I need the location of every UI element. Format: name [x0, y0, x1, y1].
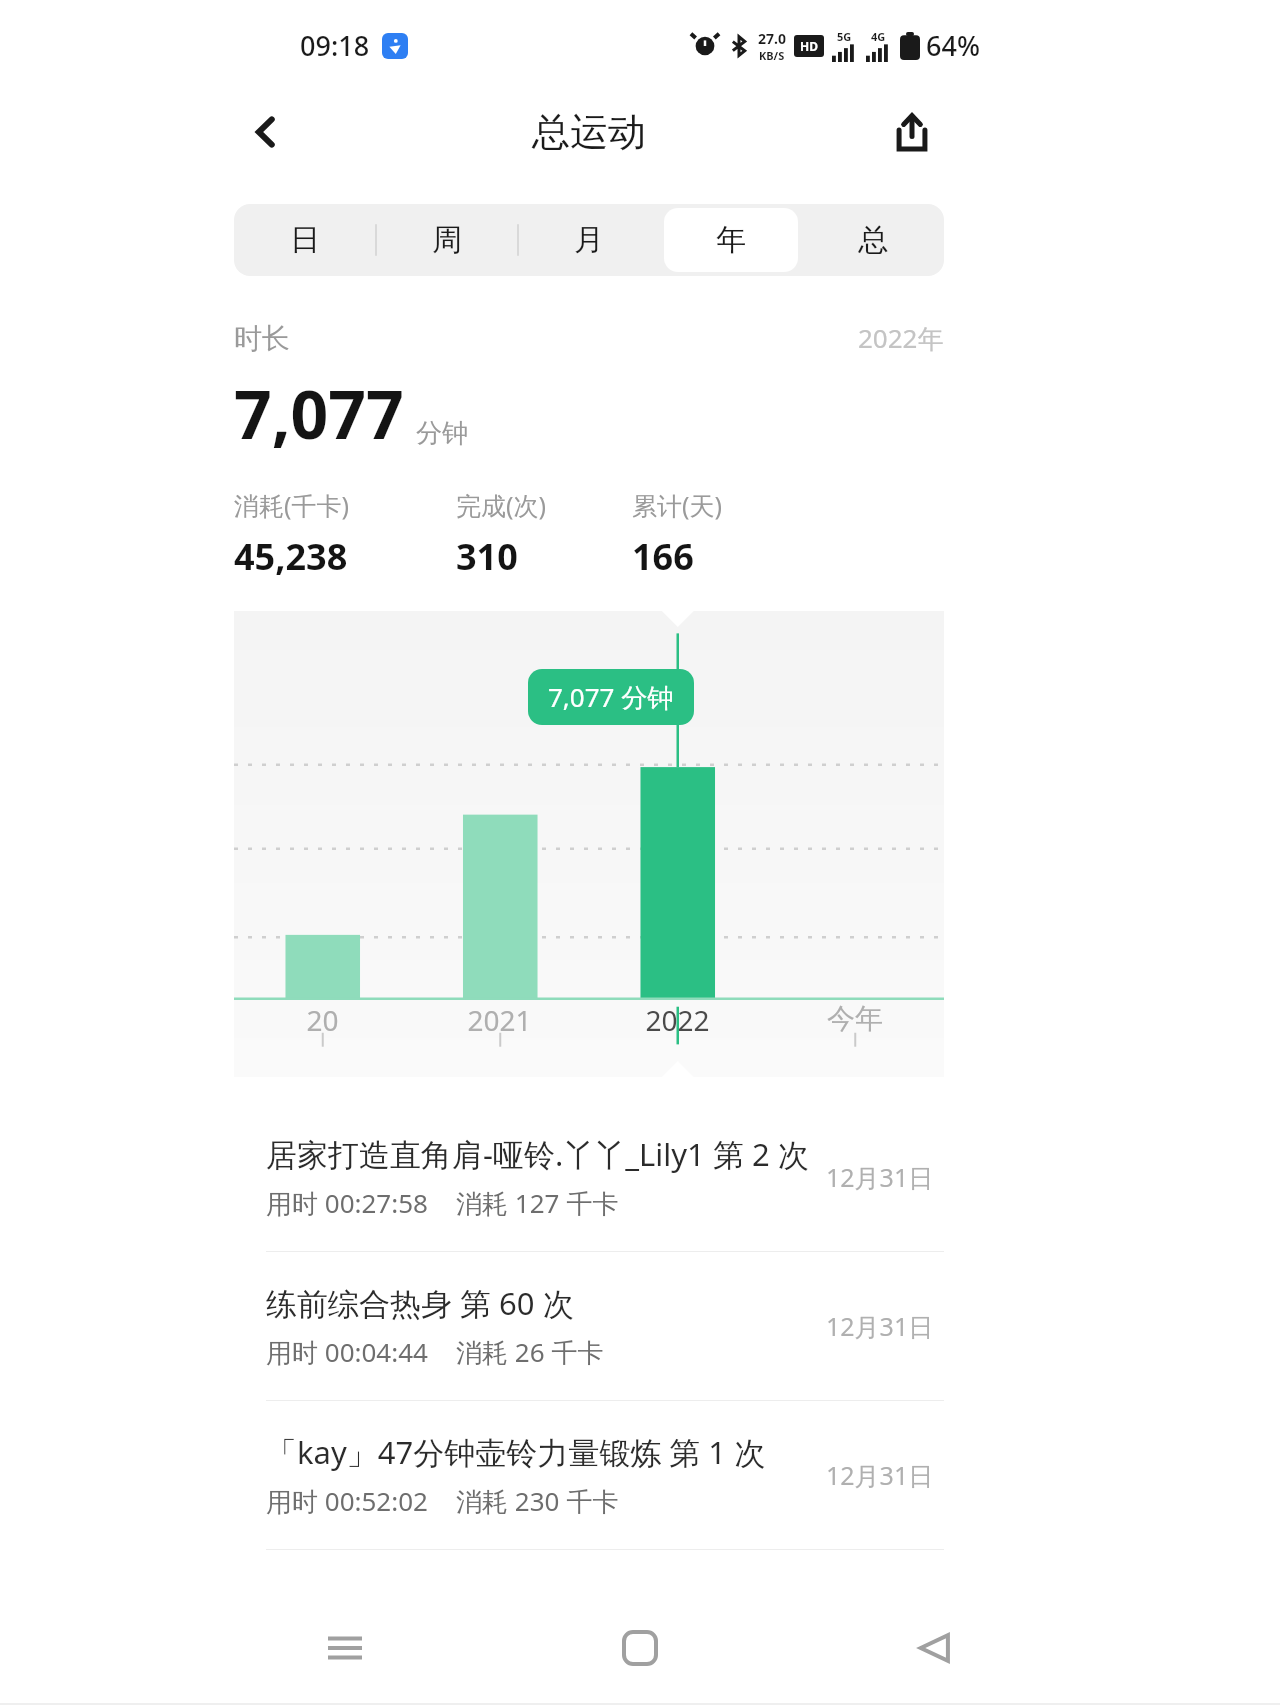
staticText: 「kay」47分钟壶铃力量锻炼 第 1 次 — [266, 1431, 766, 1473]
button[interactable]: 总 — [806, 208, 940, 272]
button[interactable]: 日 — [238, 208, 372, 272]
button[interactable]: Back — [234, 100, 298, 164]
staticText: 累计(天) — [632, 488, 723, 522]
button[interactable]: Home — [595, 1603, 685, 1693]
staticText: 消耗(千卡) — [234, 488, 350, 522]
staticText: 用时 00:27:58 — [266, 1185, 428, 1221]
staticText: 12月31日 — [826, 1458, 934, 1492]
button[interactable]: 练前综合热身 第 60 次 — [234, 1252, 944, 1400]
staticText: 166 — [632, 532, 694, 581]
staticText: 7,077 — [234, 368, 404, 458]
staticText: 用时 00:52:02 — [266, 1483, 428, 1519]
staticText: 2021 — [467, 1001, 532, 1039]
button[interactable]: Recent apps — [300, 1603, 390, 1693]
staticText: 09:18 — [300, 27, 370, 64]
button[interactable]: 周 — [380, 208, 514, 272]
staticText: 27.0 — [758, 29, 786, 48]
staticText: 时长 — [234, 321, 290, 356]
staticText: 年 — [716, 221, 746, 259]
staticText: 2022 — [645, 1001, 710, 1039]
staticText: 总 — [858, 221, 888, 259]
button[interactable]: 居家打造直角肩-哑铃.丫丫_Lily1 第 2 次 — [234, 1103, 944, 1251]
button[interactable]: 月 — [522, 208, 656, 272]
button[interactable]: Share — [880, 100, 944, 164]
staticText: 消耗 127 千卡 — [456, 1185, 619, 1221]
staticText: 12月31日 — [826, 1160, 934, 1194]
staticText: 4G — [871, 29, 886, 44]
staticText: 5G — [837, 29, 852, 44]
staticText: 消耗 230 千卡 — [456, 1483, 619, 1519]
staticText: 周 — [432, 221, 462, 259]
staticText: HD — [800, 38, 818, 54]
button[interactable]: 年 — [664, 208, 798, 272]
staticText: 月 — [574, 221, 604, 259]
button[interactable]: 「kay」47分钟壶铃力量锻炼 第 1 次 — [234, 1401, 944, 1549]
staticText: 消耗 26 千卡 — [456, 1334, 604, 1370]
button[interactable]: Back — [890, 1603, 980, 1693]
staticText: 日 — [290, 221, 320, 259]
staticText: 分钟 — [416, 417, 468, 450]
staticText: 45,238 — [234, 532, 348, 581]
staticText: KB/S — [759, 48, 785, 63]
staticText: 64% — [926, 27, 980, 64]
staticText: 居家打造直角肩-哑铃.丫丫_Lily1 第 2 次 — [266, 1133, 809, 1175]
staticText: 2022年 — [858, 320, 944, 356]
staticText: 完成(次) — [456, 488, 547, 522]
staticText: 7,077 分钟 — [548, 679, 674, 715]
staticText: 今年 — [827, 1001, 883, 1036]
staticText: 20 — [306, 1001, 339, 1039]
staticText: 练前综合热身 第 60 次 — [266, 1282, 574, 1324]
staticText: 12月31日 — [826, 1309, 934, 1343]
staticText: 310 — [456, 532, 518, 581]
staticText: 用时 00:04:44 — [266, 1334, 428, 1370]
staticText: 总运动 — [532, 108, 646, 156]
